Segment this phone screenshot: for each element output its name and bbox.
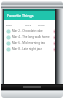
staticText: Mar 8 - Late night jazz (12, 47, 53, 51)
button[interactable]: Mar 4 - The long walk home (4, 34, 60, 40)
button[interactable]: Mar 8 - Late night jazz (4, 46, 60, 52)
staticText: Mar 6 - Mid morning tea (12, 41, 53, 45)
button[interactable]: Mar 6 - Mid morning tea (4, 40, 60, 46)
staticText: DATE (6, 23, 25, 26)
button[interactable]: Mar 2 - Chocolate cake (4, 28, 60, 34)
staticText: TITLE (25, 23, 38, 26)
staticText: Mar 2 - Chocolate cake (12, 29, 53, 33)
staticText: STATE (38, 23, 45, 26)
staticText: Favorite Things (7, 13, 34, 18)
staticText: Mar 4 - The long walk home (12, 35, 53, 39)
button[interactable]: Favorite Things (4, 11, 60, 20)
